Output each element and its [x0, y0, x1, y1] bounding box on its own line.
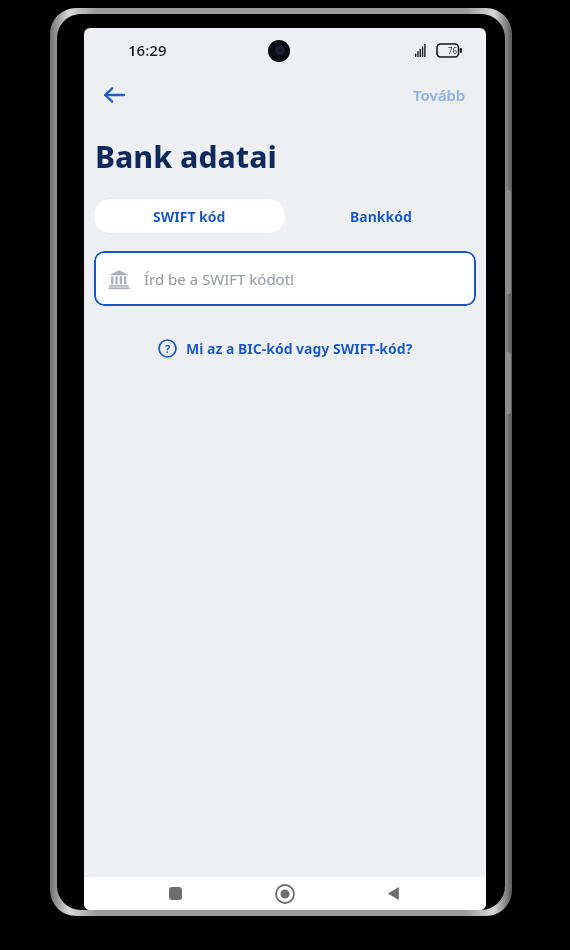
staticText: 16:29	[128, 40, 167, 60]
staticText: Írd be a SWIFT kódot!	[144, 269, 295, 289]
button[interactable]: Recent apps	[159, 877, 192, 910]
staticText: Tovább	[413, 85, 466, 105]
staticText: Mi az a BIC-kód vagy SWIFT-kód?	[186, 339, 413, 358]
button[interactable]: Home	[268, 877, 301, 910]
staticText: Bank adatai	[95, 136, 277, 177]
staticText: ?	[165, 341, 171, 356]
button[interactable]: Back	[94, 75, 134, 115]
button[interactable]: Back	[377, 877, 410, 910]
button[interactable]: Bankkód	[285, 199, 476, 233]
button[interactable]: ?	[152, 334, 419, 363]
staticText: Bankkód	[350, 207, 412, 226]
button[interactable]: Tovább	[407, 79, 472, 111]
staticText: 76	[448, 45, 458, 56]
button[interactable]: SWIFT kód	[94, 199, 285, 233]
staticText: SWIFT kód	[153, 207, 226, 226]
button[interactable]: Írd be a SWIFT kódot!	[94, 251, 476, 306]
